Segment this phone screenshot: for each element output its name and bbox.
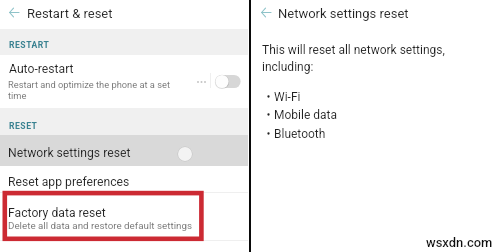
button[interactable]: More options	[194, 75, 208, 89]
staticText: Bluetooth	[274, 127, 326, 140]
staticText: This will reset all network settings, in…	[262, 43, 458, 74]
button[interactable]: Network settings reset	[0, 135, 248, 166]
button[interactable]: Back	[258, 4, 274, 20]
staticText: Wi-Fi	[274, 90, 301, 103]
button[interactable]: Reset app preferences	[0, 166, 248, 192]
button[interactable]	[215, 74, 241, 89]
staticText: Network settings reset	[8, 146, 131, 160]
staticText: Restart and optimize the phone at a set …	[8, 79, 184, 101]
button[interactable]: Back	[6, 4, 22, 20]
staticText: Reset app preferences	[8, 175, 130, 189]
button[interactable]: Factory data reset	[0, 193, 248, 240]
staticText: Factory data reset	[8, 206, 106, 220]
staticText: Mobile data	[274, 108, 337, 121]
staticText: Delete all data and restore default sett…	[8, 220, 192, 231]
button[interactable]: Mobile data	[267, 108, 337, 121]
button[interactable]: Wi-Fi	[267, 90, 301, 103]
staticText: RESET	[9, 121, 38, 131]
staticText: Network settings reset	[278, 6, 409, 21]
button[interactable]: Bluetooth	[267, 127, 326, 140]
staticText: wsxdn.com	[426, 235, 493, 250]
staticText: Restart & reset	[27, 6, 113, 21]
staticText: Auto-restart	[9, 62, 74, 76]
staticText: RESTART	[9, 40, 50, 50]
